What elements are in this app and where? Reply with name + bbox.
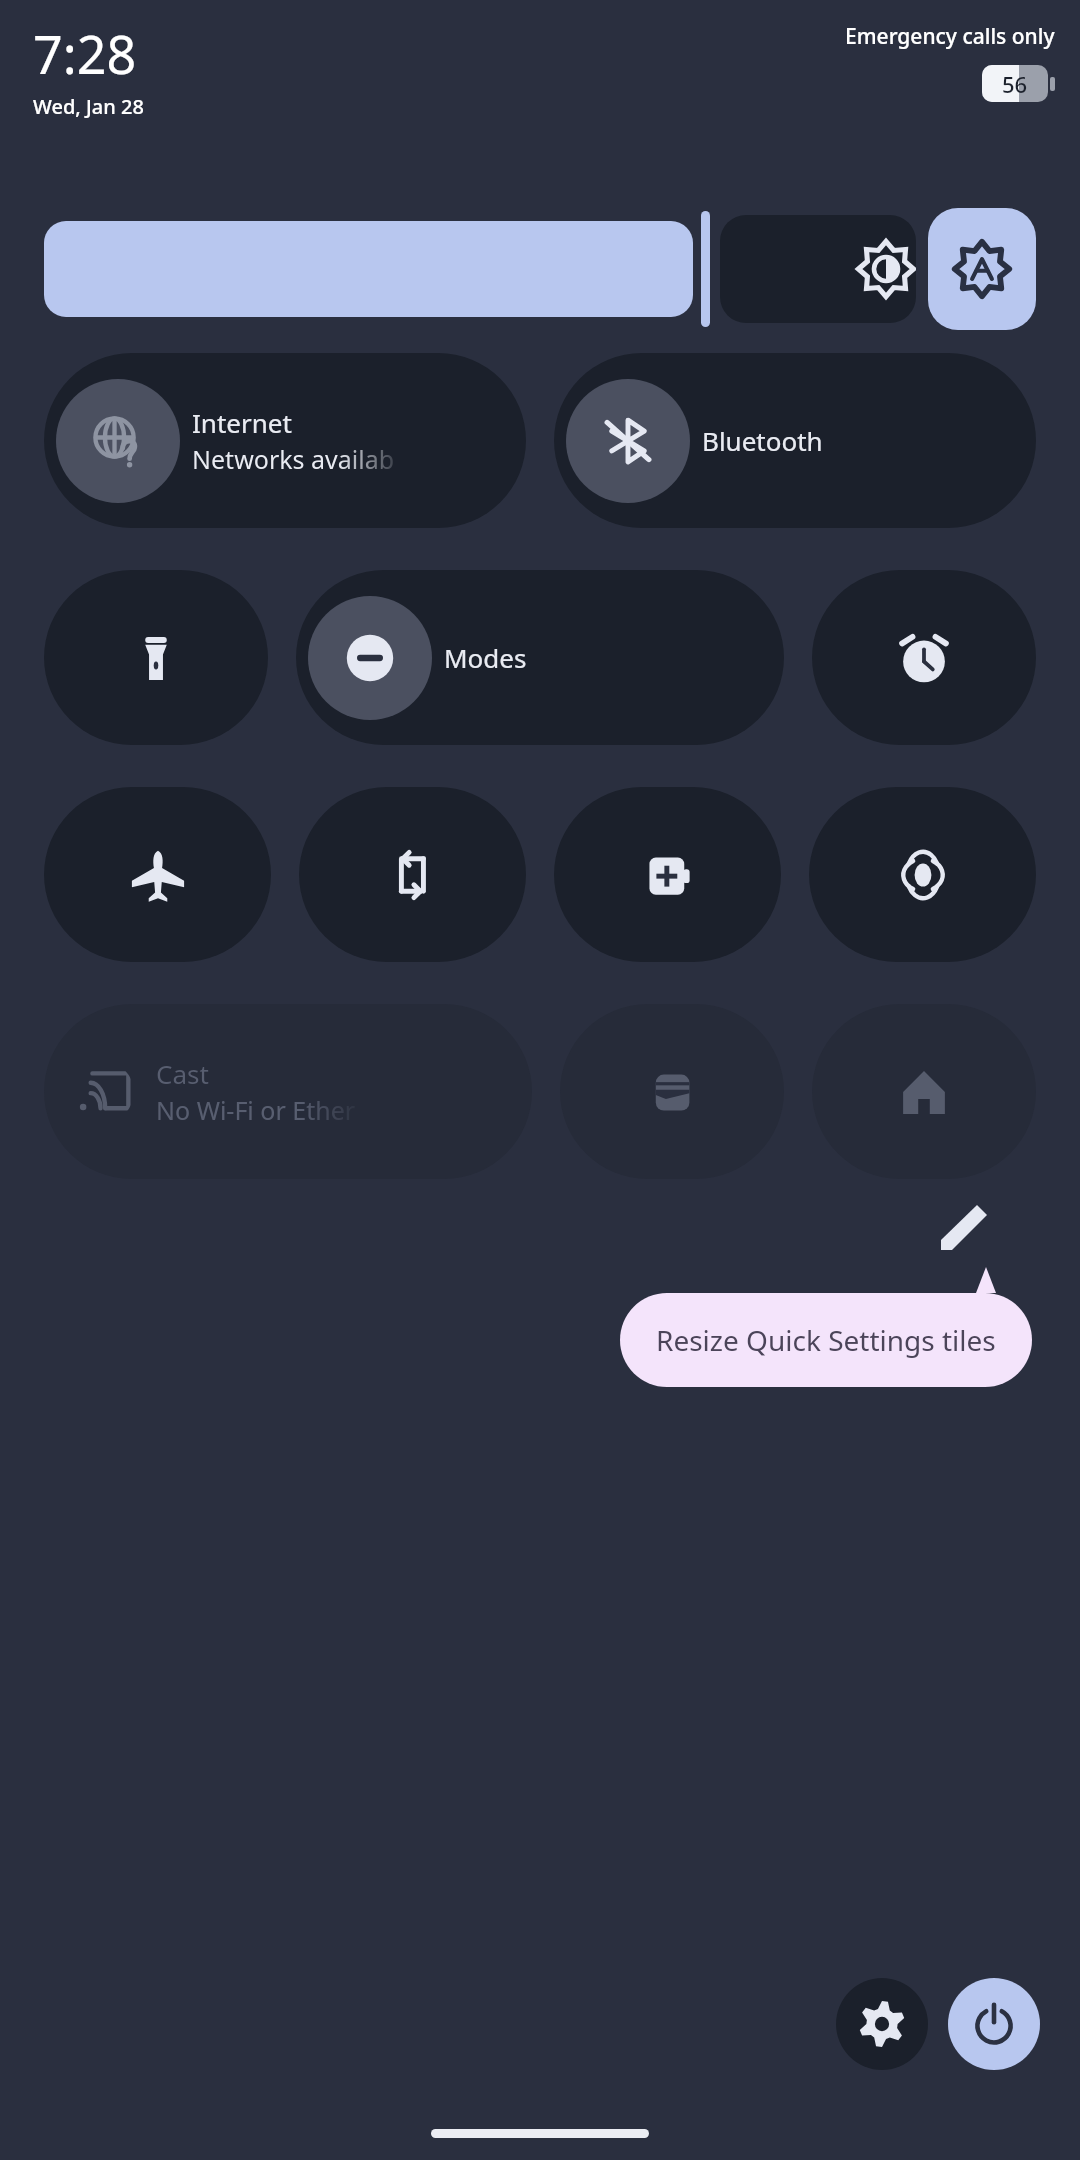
button[interactable]: Auto brightness	[928, 208, 1036, 330]
button[interactable]: Bluetooth	[554, 353, 1036, 528]
button[interactable]: Cast	[44, 1004, 532, 1179]
staticText: Networks availab	[192, 442, 395, 476]
button[interactable]: Alarm	[812, 570, 1036, 745]
staticText: No Wi-Fi or Ether	[156, 1093, 356, 1127]
staticText: Resize Quick Settings tiles	[656, 1321, 996, 1359]
staticText: 56	[1002, 69, 1028, 99]
staticText: Bluetooth	[702, 423, 823, 458]
button[interactable]: Brightness	[44, 208, 693, 330]
staticText: Wed, Jan 28	[33, 93, 144, 120]
button[interactable]: Flashlight	[44, 570, 268, 745]
button[interactable]: Settings	[836, 1978, 928, 2070]
button[interactable]: Battery saver	[554, 787, 781, 962]
button[interactable]: Auto rotate	[299, 787, 526, 962]
button[interactable]: Home	[812, 1004, 1036, 1179]
staticText: Emergency calls only	[845, 22, 1055, 51]
button[interactable]: Device controls	[809, 787, 1036, 962]
staticText: Internet	[192, 405, 292, 440]
button[interactable]: Modes	[296, 570, 784, 745]
button[interactable]: Edit tiles	[928, 1191, 1000, 1263]
button[interactable]: Airplane mode	[44, 787, 271, 962]
button[interactable]: Internet	[44, 353, 526, 528]
staticText: Modes	[444, 640, 527, 675]
button[interactable]: Wallet	[560, 1004, 784, 1179]
button[interactable]: Power	[948, 1978, 1040, 2070]
staticText: 7:28	[33, 18, 137, 89]
button[interactable]: Brightness level	[720, 215, 916, 323]
button[interactable]: Resize Quick Settings tiles	[620, 1293, 1032, 1387]
staticText: Cast	[156, 1056, 209, 1091]
